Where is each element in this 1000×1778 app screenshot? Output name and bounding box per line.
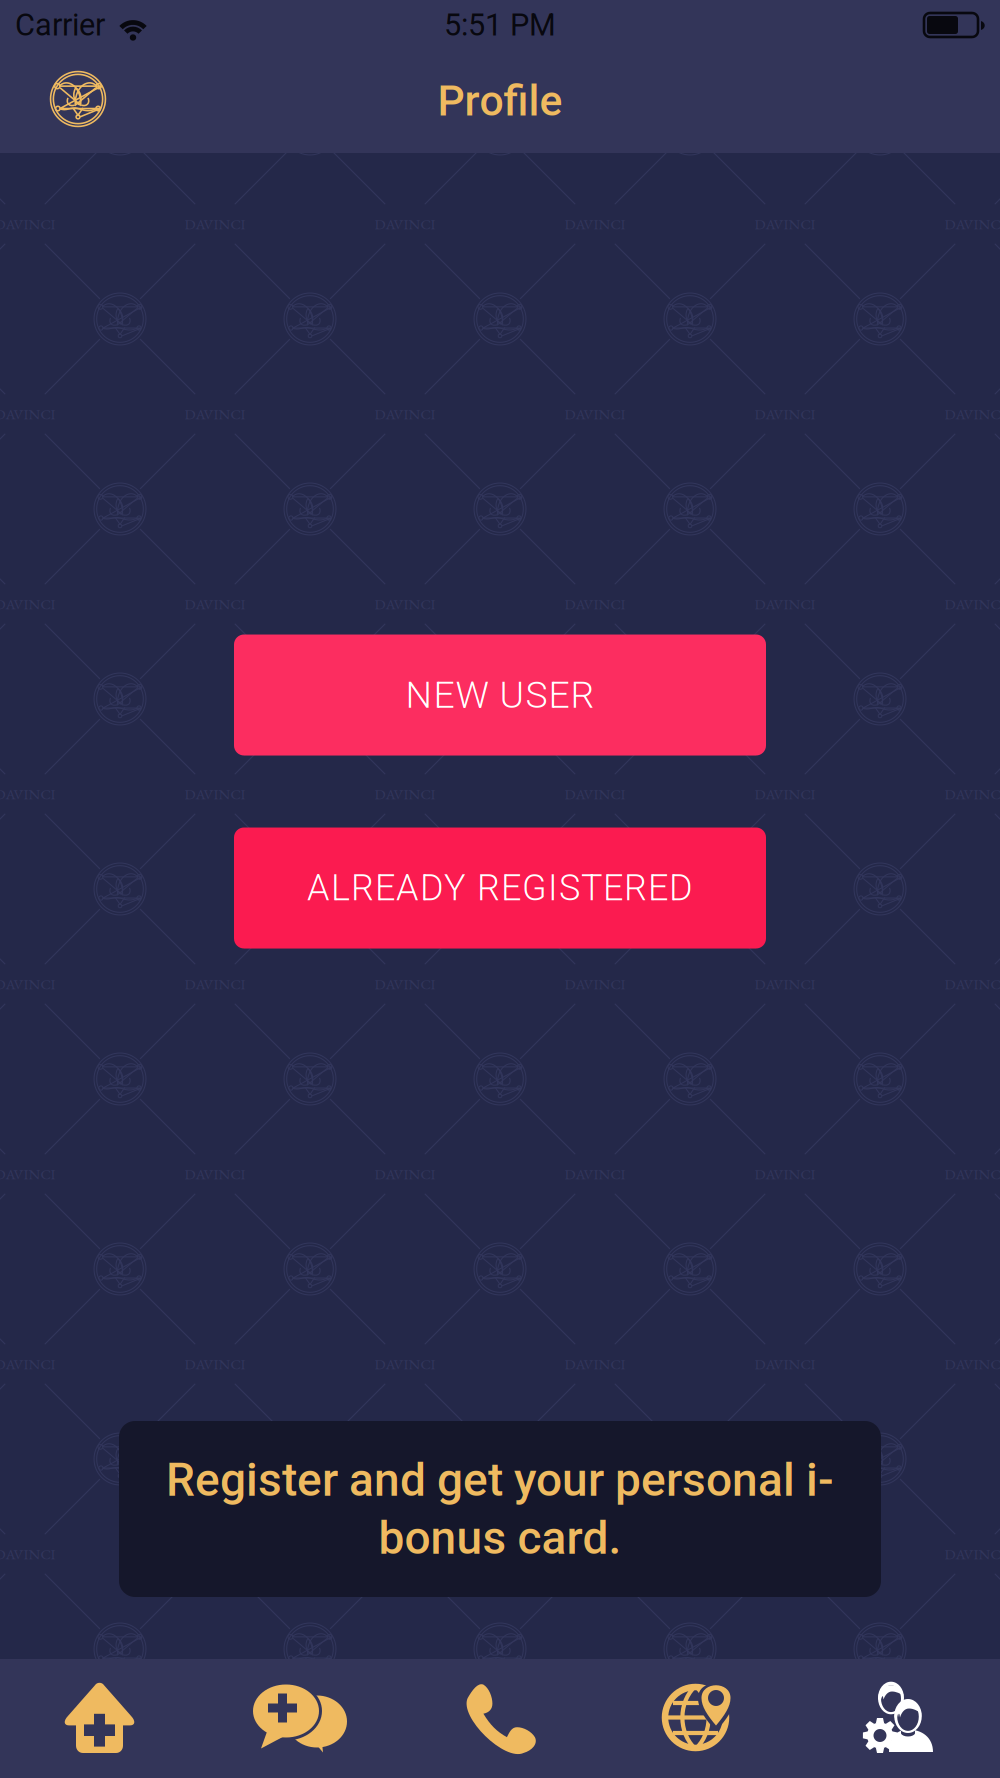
staticText: DAVINCI	[754, 404, 815, 423]
staticText: Profile	[437, 76, 562, 126]
staticText: DAVINCI	[374, 1164, 435, 1183]
staticText: DAVINCI	[0, 1164, 55, 1183]
staticText: DAVINCI	[184, 784, 245, 803]
staticText: DAVINCI	[184, 214, 245, 233]
staticText: DAVINCI	[564, 974, 625, 993]
staticText: DAVINCI	[184, 974, 245, 993]
staticText: ALREADY REGISTERED	[307, 867, 693, 909]
staticText: DAVINCI	[754, 594, 815, 613]
staticText: DAVINCI	[754, 784, 815, 803]
button[interactable]: Home	[0, 1659, 200, 1778]
staticText: DAVINCI	[0, 974, 55, 993]
staticText: DAVINCI	[944, 1544, 1000, 1563]
staticText: DAVINCI	[374, 404, 435, 423]
staticText: DAVINCI	[944, 1354, 1000, 1373]
staticText: DAVINCI	[374, 974, 435, 993]
staticText: DAVINCI	[944, 1164, 1000, 1183]
staticText: DAVINCI	[184, 1354, 245, 1373]
staticText: DAVINCI	[374, 784, 435, 803]
staticText: DAVINCI	[754, 974, 815, 993]
staticText: DAVINCI	[0, 1354, 55, 1373]
staticText: bonus card.	[378, 1511, 621, 1565]
staticText: DAVINCI	[944, 404, 1000, 423]
staticText: DAVINCI	[564, 784, 625, 803]
button[interactable]: Profile	[800, 1659, 1000, 1778]
button[interactable]: NEW USER	[234, 634, 766, 755]
button[interactable]: Messages	[200, 1659, 400, 1778]
staticText: DAVINCI	[0, 24, 55, 43]
staticText: DAVINCI	[944, 24, 1000, 43]
staticText: DAVINCI	[374, 1544, 435, 1563]
staticText: DAVINCI	[184, 1164, 245, 1183]
staticText: DAVINCI	[564, 1164, 625, 1183]
staticText: DAVINCI	[564, 404, 625, 423]
staticText: DAVINCI	[374, 1354, 435, 1373]
button[interactable]: Call	[400, 1659, 600, 1778]
staticText: DAVINCI	[564, 594, 625, 613]
staticText: DAVINCI	[0, 404, 55, 423]
staticText: NEW USER	[405, 673, 594, 717]
staticText: DAVINCI	[564, 1544, 625, 1563]
button[interactable]: Locations	[600, 1659, 800, 1778]
button[interactable]: Menu	[34, 55, 122, 143]
staticText: DAVINCI	[564, 214, 625, 233]
staticText: DAVINCI	[0, 784, 55, 803]
staticText: DAVINCI	[944, 214, 1000, 233]
staticText: DAVINCI	[754, 1164, 815, 1183]
staticText: DAVINCI	[944, 594, 1000, 613]
staticText: DAVINCI	[564, 1354, 625, 1373]
staticText: DAVINCI	[374, 214, 435, 233]
staticText: DAVINCI	[184, 594, 245, 613]
staticText: DAVINCI	[184, 404, 245, 423]
staticText: 5:51 PM	[444, 7, 556, 43]
staticText: Carrier	[15, 7, 105, 43]
staticText: DAVINCI	[0, 594, 55, 613]
staticText: DAVINCI	[0, 214, 55, 233]
staticText: DAVINCI	[754, 1354, 815, 1373]
staticText: DAVINCI	[374, 594, 435, 613]
staticText: DAVINCI	[754, 214, 815, 233]
staticText: DAVINCI	[944, 974, 1000, 993]
staticText: Register and get your personal i-	[166, 1453, 834, 1507]
staticText: DAVINCI	[0, 1544, 55, 1563]
staticText: DAVINCI	[944, 784, 1000, 803]
button[interactable]: ALREADY REGISTERED	[234, 827, 766, 948]
